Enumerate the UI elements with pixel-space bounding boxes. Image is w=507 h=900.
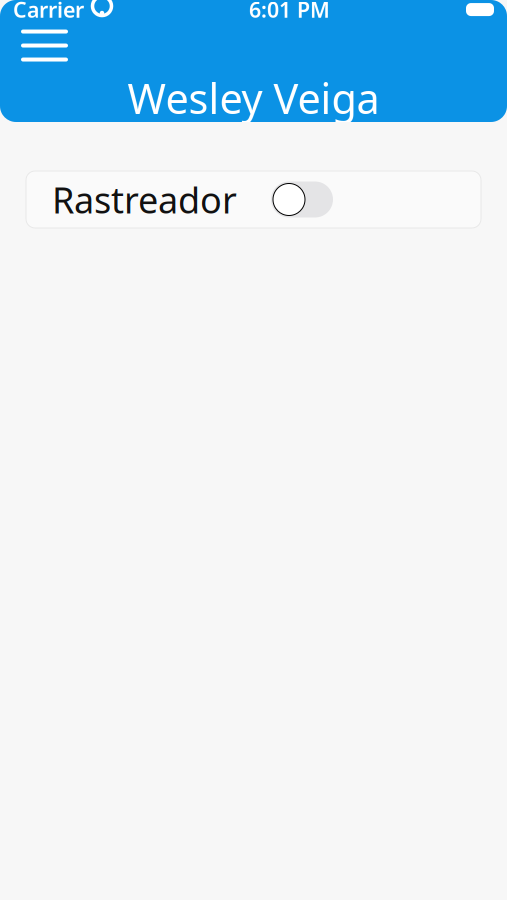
staticText: Carrier	[13, 0, 84, 24]
staticText: 6:01 PM	[249, 0, 330, 24]
staticText: Wesley Veiga	[127, 71, 379, 125]
button[interactable]: Menu	[0, 27, 81, 65]
staticText: Rastreador	[52, 176, 237, 223]
button[interactable]: Rastreador toggle, off	[271, 181, 333, 217]
